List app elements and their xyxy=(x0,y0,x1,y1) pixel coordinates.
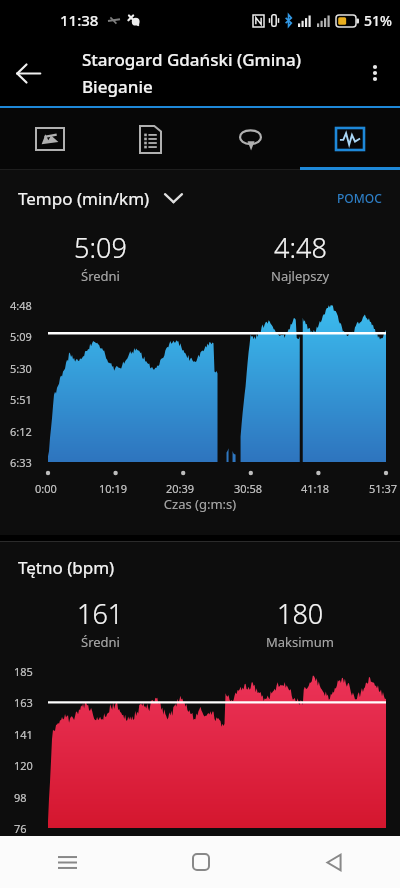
staticText: 20:39 xyxy=(166,481,195,496)
staticText: 161 xyxy=(77,595,124,632)
staticText: 4:48 xyxy=(10,298,32,313)
button[interactable]: POMOC xyxy=(331,184,388,212)
staticText: Maksimum xyxy=(266,633,334,651)
staticText: 76 xyxy=(14,821,27,836)
button[interactable]: Charts xyxy=(300,108,400,170)
staticText: 6:33 xyxy=(10,455,32,470)
staticText: 0:00 xyxy=(35,481,57,496)
staticText: Czas (g:m:s) xyxy=(0,495,400,513)
button[interactable]: Change metric xyxy=(158,183,188,213)
staticText: 163 xyxy=(14,695,33,710)
staticText: 41:18 xyxy=(301,847,330,862)
staticText: 51% xyxy=(364,11,392,30)
staticText: 5:51 xyxy=(10,392,32,407)
staticText: 141 xyxy=(14,727,33,742)
staticText: Najlepszy xyxy=(271,267,330,285)
button[interactable]: Map xyxy=(0,108,100,170)
staticText: Tętno (bpm) xyxy=(18,556,115,579)
staticText: Średni xyxy=(81,267,120,285)
staticText: 30:58 xyxy=(234,481,263,496)
staticText: 5:09 xyxy=(10,329,32,344)
staticText: Bieganie xyxy=(82,75,153,98)
staticText: Tempo (min/km) xyxy=(18,187,150,210)
staticText: 11:38 xyxy=(60,10,99,30)
staticText: 41:18 xyxy=(301,481,330,496)
staticText: 51:37 xyxy=(369,481,398,496)
staticText: 5:09 xyxy=(74,229,127,266)
staticText: 20:39 xyxy=(166,847,195,862)
staticText: Starogard Gdański (Gmina) xyxy=(82,48,301,71)
staticText: 98 xyxy=(14,790,27,805)
button[interactable]: More options xyxy=(350,48,400,98)
staticText: 180 xyxy=(277,595,324,632)
staticText: POMOC xyxy=(337,190,382,206)
staticText: 5:30 xyxy=(10,361,32,376)
staticText: 10:19 xyxy=(99,481,128,496)
button[interactable]: Laps xyxy=(200,108,300,170)
staticText: 185 xyxy=(14,664,33,679)
button[interactable]: Back xyxy=(267,836,400,888)
button[interactable]: Details xyxy=(100,108,200,170)
staticText: 4:48 xyxy=(274,229,327,266)
staticText: Średni xyxy=(81,633,120,651)
button[interactable]: Back xyxy=(0,45,56,101)
button[interactable]: Home xyxy=(134,836,267,888)
button[interactable]: Recent apps xyxy=(0,836,134,888)
staticText: 120 xyxy=(14,758,33,773)
staticText: 6:12 xyxy=(10,424,32,439)
